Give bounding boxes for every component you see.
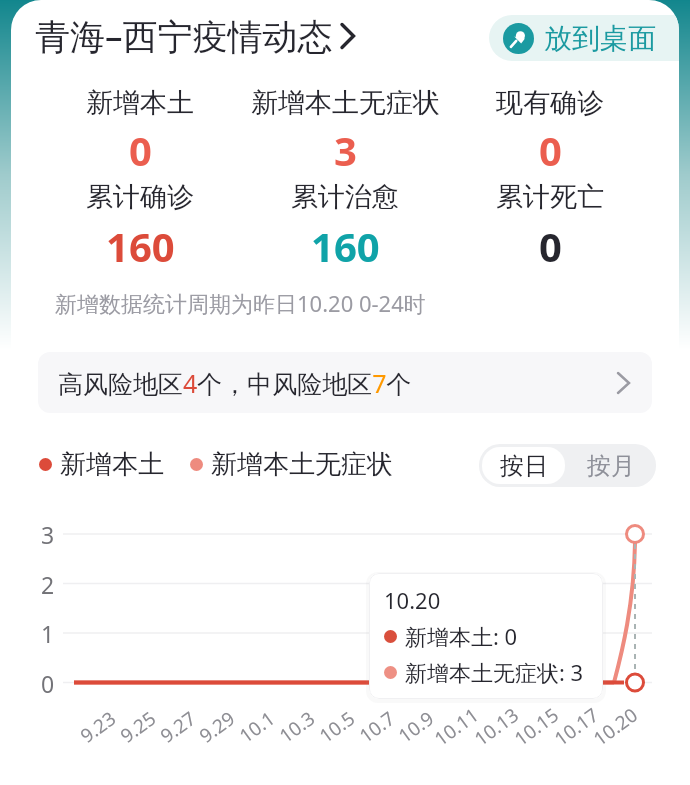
- staticText: 160: [311, 219, 380, 263]
- staticText: 160: [106, 219, 175, 263]
- staticText: 新增本土: [86, 86, 194, 120]
- staticText: 0: [539, 123, 562, 167]
- staticText: 3: [41, 519, 55, 550]
- staticText: 累计死亡: [496, 180, 604, 214]
- staticText: 新增本土: [60, 448, 164, 481]
- staticText: 新增本土无症状: [251, 86, 440, 120]
- staticText: 现有确诊: [496, 86, 604, 120]
- staticText: 新增数据统计周期为昨日10.20 0-24时: [55, 288, 426, 318]
- staticText: 0: [129, 123, 152, 167]
- staticText: 10.5: [314, 705, 360, 749]
- staticText: 放到桌面: [544, 21, 656, 56]
- staticText: 10.11: [429, 702, 484, 752]
- staticText: 9.27: [155, 705, 201, 749]
- staticText: 0: [539, 219, 562, 263]
- staticText: 10.13: [469, 702, 524, 752]
- button[interactable]: 放到桌面: [489, 15, 679, 61]
- staticText: 10.3: [274, 705, 320, 749]
- staticText: 9.29: [194, 705, 240, 749]
- staticText: 新增本土无症状: [211, 448, 393, 481]
- staticText: 9.25: [115, 705, 161, 749]
- staticText: 10.15: [509, 702, 564, 752]
- staticText: 累计确诊: [86, 180, 194, 214]
- staticText: 高风险地区4个，中风险地区7个: [58, 366, 412, 400]
- button[interactable]: 按日: [482, 447, 565, 484]
- staticText: 青海–西宁疫情动态: [35, 12, 333, 60]
- button[interactable]: 青海–西宁疫情动态: [35, 12, 355, 60]
- staticText: 10.20: [384, 585, 441, 615]
- staticText: 1: [41, 618, 55, 649]
- staticText: 10.17: [549, 702, 604, 752]
- staticText: 10.1: [234, 705, 280, 749]
- staticText: 0: [41, 668, 55, 699]
- staticText: 3: [334, 123, 357, 167]
- button[interactable]: 高风险地区4个，中风险地区7个: [38, 352, 652, 413]
- staticText: 按月: [587, 451, 635, 481]
- staticText: 2: [41, 569, 55, 600]
- staticText: 9.23: [75, 705, 121, 749]
- staticText: 10.9: [393, 705, 439, 749]
- staticText: 按日: [500, 451, 548, 481]
- staticText: 新增本土无症状: 3: [405, 657, 584, 687]
- staticText: 新增本土: 0: [405, 621, 518, 651]
- button[interactable]: 按月: [565, 444, 656, 487]
- staticText: 10.20: [588, 702, 643, 752]
- staticText: 10.7: [354, 705, 400, 749]
- staticText: 累计治愈: [291, 180, 399, 214]
